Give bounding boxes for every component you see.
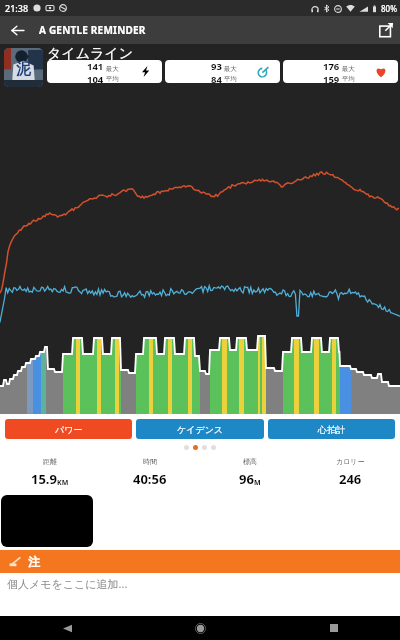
staticText: 40:56 bbox=[133, 470, 167, 488]
staticText: 最大 bbox=[340, 64, 355, 73]
staticText: 80% bbox=[381, 3, 397, 14]
button[interactable]: Back bbox=[0, 16, 34, 44]
staticText: A GENTLE REMINDER bbox=[39, 23, 146, 37]
staticText: タイムライン bbox=[47, 45, 133, 63]
staticText: 最大 bbox=[104, 64, 119, 73]
staticText: 注 bbox=[28, 554, 40, 569]
button[interactable]: Back bbox=[0, 616, 134, 640]
staticText: 21:38 bbox=[5, 2, 29, 14]
button[interactable]: Edit bbox=[372, 16, 400, 44]
button[interactable]: Route map bbox=[1, 495, 93, 547]
staticText: 84 bbox=[211, 73, 222, 83]
button[interactable]: 176 bbox=[283, 60, 398, 83]
button[interactable]: Activity photo bbox=[4, 48, 43, 87]
staticText: 心拍計 bbox=[318, 424, 345, 435]
staticText: 141 bbox=[87, 60, 104, 73]
staticText: 93 bbox=[211, 60, 222, 73]
staticText: M bbox=[254, 478, 261, 488]
button[interactable]: 注 bbox=[9, 550, 400, 573]
staticText: パワー bbox=[55, 424, 83, 435]
staticText: 泥 bbox=[16, 60, 31, 79]
staticText: 15.9 bbox=[31, 470, 57, 488]
staticText: 平均 bbox=[104, 74, 119, 83]
staticText: 標高 bbox=[243, 457, 257, 466]
staticText: 平均 bbox=[340, 74, 355, 83]
staticText: 個人メモをここに追加... bbox=[7, 576, 128, 591]
button[interactable]: ケイデンス bbox=[136, 419, 264, 439]
staticText: カロリー bbox=[336, 457, 365, 466]
staticText: ケイデンス bbox=[177, 424, 224, 435]
staticText: 176 bbox=[323, 60, 340, 73]
staticText: KM bbox=[57, 478, 69, 488]
staticText: 平均 bbox=[222, 74, 237, 83]
button[interactable]: 心拍計 bbox=[268, 419, 395, 439]
staticText: 159 bbox=[323, 73, 340, 83]
staticText: 時間 bbox=[143, 457, 157, 466]
staticText: 距離 bbox=[43, 457, 57, 466]
button[interactable]: 141 bbox=[47, 60, 162, 83]
staticText: 246 bbox=[339, 470, 362, 488]
button[interactable]: パワー bbox=[5, 419, 132, 439]
button[interactable]: Recents bbox=[267, 616, 400, 640]
button[interactable]: 93 bbox=[165, 60, 280, 83]
staticText: 96 bbox=[239, 470, 254, 488]
button[interactable]: Home bbox=[134, 616, 267, 640]
staticText: 最大 bbox=[222, 64, 237, 73]
staticText: 104 bbox=[87, 73, 104, 83]
